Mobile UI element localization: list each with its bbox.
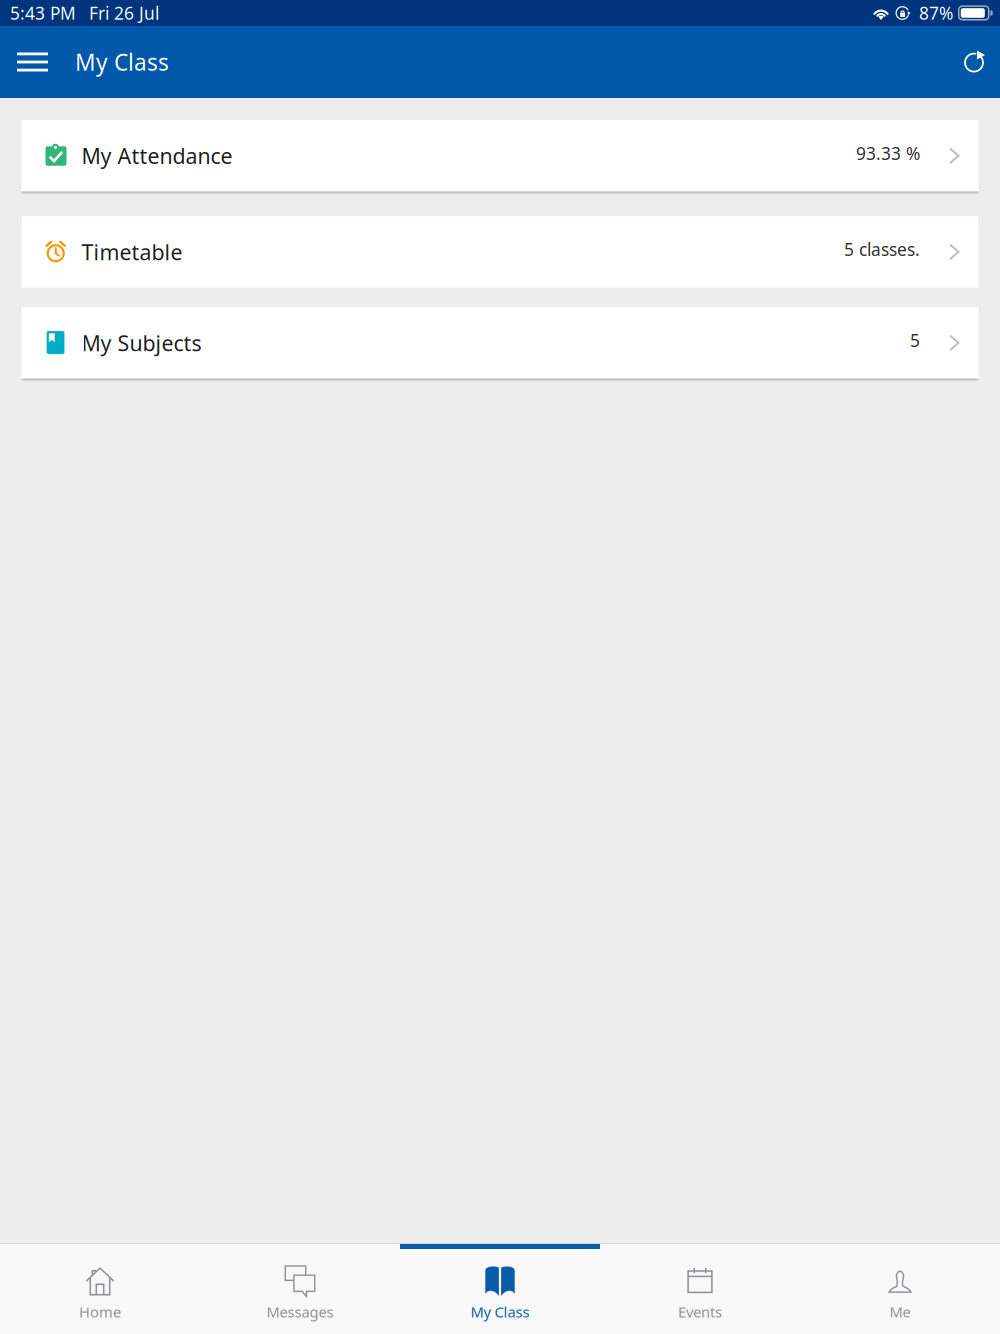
button[interactable]: Me <box>800 1244 1000 1334</box>
staticText: 93.33 % <box>856 142 920 165</box>
staticText: 5 classes. <box>844 238 920 261</box>
staticText: Home <box>79 1302 121 1321</box>
staticText: Fri 26 Jul <box>89 1 159 24</box>
staticText: Me <box>889 1302 910 1321</box>
button[interactable]: Timetable <box>21 216 978 288</box>
staticText: My Subjects <box>81 329 201 357</box>
staticText: Events <box>678 1302 722 1321</box>
staticText: 5 <box>910 329 920 352</box>
button[interactable]: Messages <box>200 1244 400 1334</box>
staticText: My Class <box>470 1302 529 1321</box>
staticText: 87% <box>919 1 953 24</box>
staticText: Timetable <box>81 238 182 266</box>
button[interactable]: My Subjects <box>21 307 978 381</box>
button[interactable]: Menu <box>0 26 75 98</box>
staticText: My Attendance <box>81 142 232 170</box>
button[interactable]: Refresh <box>941 26 1000 98</box>
staticText: My Class <box>75 47 169 77</box>
button[interactable]: Home <box>0 1244 200 1334</box>
staticText: Messages <box>266 1302 333 1321</box>
button[interactable]: My Class <box>400 1244 600 1334</box>
button[interactable]: My Attendance <box>21 120 978 194</box>
button[interactable]: Events <box>600 1244 800 1334</box>
staticText: 5:43 PM <box>10 1 76 24</box>
